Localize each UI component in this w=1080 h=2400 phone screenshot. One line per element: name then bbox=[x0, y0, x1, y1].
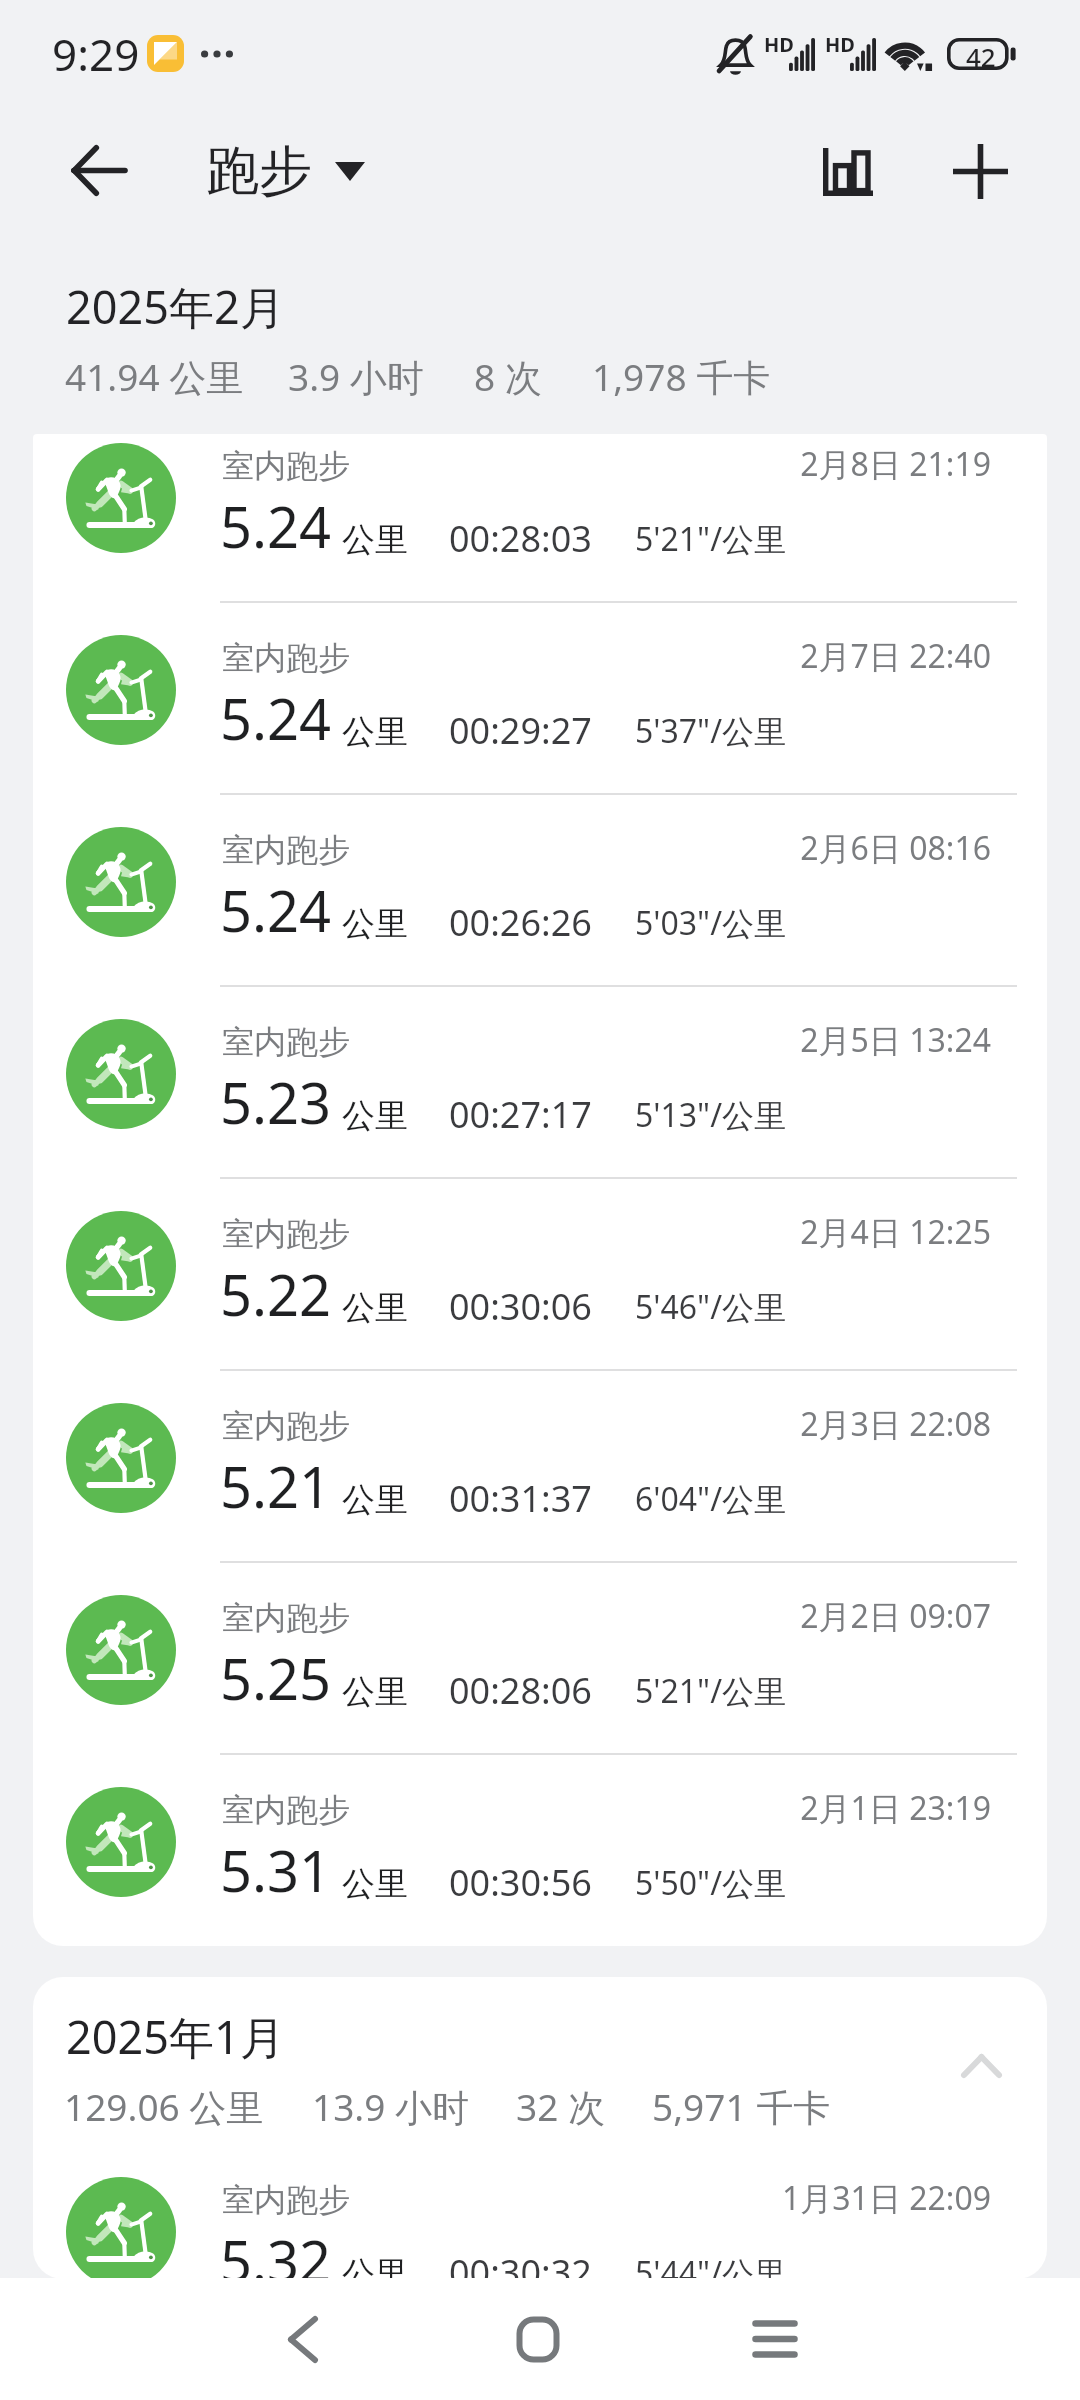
button[interactable]: Back bbox=[38, 110, 158, 230]
staticText: 1月31日 22:09 bbox=[681, 2176, 991, 2220]
staticText: 5'50"/公里 bbox=[635, 1861, 787, 1905]
button[interactable]: Back bbox=[233, 2278, 373, 2400]
staticText: 室内跑步 bbox=[222, 2180, 350, 2220]
button[interactable]: 室内跑步 bbox=[33, 1177, 1047, 1369]
staticText: 2月4日 12:25 bbox=[681, 1210, 991, 1254]
staticText: 00:30:06 bbox=[449, 1282, 592, 1331]
staticText: 00:30:56 bbox=[449, 1858, 592, 1907]
staticText: 5'44"/公里 bbox=[635, 2251, 787, 2279]
staticText: 13.9 小时 bbox=[312, 2081, 470, 2132]
staticText: 室内跑步 bbox=[222, 1406, 350, 1446]
button[interactable]: 室内跑步 bbox=[33, 1369, 1047, 1561]
staticText: 公里 bbox=[342, 711, 408, 753]
staticText: 公里 bbox=[342, 1671, 408, 1713]
staticText: 9:29 bbox=[52, 24, 140, 84]
staticText: 2025年2月 bbox=[66, 276, 285, 337]
button[interactable]: 室内跑步 bbox=[33, 434, 1047, 601]
staticText: 公里 bbox=[342, 1479, 408, 1521]
staticText: 00:31:37 bbox=[449, 1474, 592, 1523]
staticText: 5.21 bbox=[220, 1448, 332, 1524]
staticText: 6'04"/公里 bbox=[635, 1477, 787, 1521]
staticText: 129.06 公里 bbox=[64, 2081, 264, 2132]
staticText: 2月2日 09:07 bbox=[681, 1594, 991, 1638]
staticText: 公里 bbox=[342, 519, 408, 561]
staticText: 2月8日 21:19 bbox=[681, 442, 991, 486]
button[interactable]: 室内跑步 bbox=[33, 1561, 1047, 1753]
staticText: 00:29:27 bbox=[449, 706, 592, 755]
staticText: 1,978 千卡 bbox=[592, 351, 771, 402]
staticText: 室内跑步 bbox=[222, 1598, 350, 1638]
staticText: 2月1日 23:19 bbox=[681, 1786, 991, 1830]
button[interactable]: 室内跑步 bbox=[33, 793, 1047, 985]
staticText: 00:28:03 bbox=[449, 514, 592, 563]
button[interactable]: Recents bbox=[705, 2278, 845, 2400]
staticText: 室内跑步 bbox=[222, 1790, 350, 1830]
staticText: 公里 bbox=[342, 1287, 408, 1329]
staticText: 跑步 bbox=[206, 138, 312, 205]
staticText: 5.24 bbox=[220, 872, 332, 948]
staticText: 5.22 bbox=[220, 1256, 332, 1332]
staticText: 42 bbox=[966, 39, 996, 71]
staticText: HD bbox=[825, 31, 855, 58]
staticText: 5'37"/公里 bbox=[635, 709, 787, 753]
button[interactable]: 室内跑步 bbox=[33, 601, 1047, 793]
staticText: 室内跑步 bbox=[222, 638, 350, 678]
button[interactable]: 室内跑步 bbox=[33, 1753, 1047, 1921]
staticText: 公里 bbox=[342, 1095, 408, 1137]
staticText: 5.25 bbox=[220, 1640, 332, 1716]
staticText: HD bbox=[764, 31, 794, 58]
button[interactable]: Home bbox=[468, 2278, 608, 2400]
staticText: 00:28:06 bbox=[449, 1666, 592, 1715]
staticText: 00:30:32 bbox=[449, 2248, 592, 2279]
staticText: 32 次 bbox=[516, 2081, 605, 2132]
button[interactable]: 室内跑步 bbox=[33, 985, 1047, 1177]
staticText: 5'03"/公里 bbox=[635, 901, 787, 945]
staticText: 室内跑步 bbox=[222, 1022, 350, 1062]
staticText: 公里 bbox=[342, 903, 408, 945]
button[interactable]: Add bbox=[920, 111, 1040, 231]
staticText: 5,971 千卡 bbox=[652, 2081, 831, 2132]
button[interactable]: Statistics bbox=[788, 111, 908, 231]
staticText: 3.9 小时 bbox=[288, 351, 424, 402]
staticText: 2月3日 22:08 bbox=[681, 1402, 991, 1446]
staticText: 室内跑步 bbox=[222, 830, 350, 870]
staticText: 00:26:26 bbox=[449, 898, 592, 947]
staticText: 5.24 bbox=[220, 680, 332, 756]
staticText: 5.24 bbox=[220, 488, 332, 564]
staticText: 5'13"/公里 bbox=[635, 1093, 787, 1137]
staticText: 8 次 bbox=[474, 351, 542, 402]
staticText: 室内跑步 bbox=[222, 446, 350, 486]
button[interactable]: Collapse bbox=[931, 2016, 1031, 2116]
staticText: 公里 bbox=[342, 1863, 408, 1905]
staticText: 5.23 bbox=[220, 1064, 332, 1140]
button[interactable]: 跑步 bbox=[198, 120, 374, 196]
staticText: 2月6日 08:16 bbox=[681, 826, 991, 870]
staticText: 41.94 公里 bbox=[65, 351, 244, 402]
staticText: 室内跑步 bbox=[222, 1214, 350, 1254]
staticText: 公里 bbox=[342, 2253, 408, 2279]
staticText: 2月5日 13:24 bbox=[681, 1018, 991, 1062]
staticText: 5'46"/公里 bbox=[635, 1285, 787, 1329]
staticText: 00:27:17 bbox=[449, 1090, 592, 1139]
button[interactable]: 室内跑步 bbox=[33, 2143, 1047, 2279]
staticText: 2月7日 22:40 bbox=[681, 634, 991, 678]
staticText: 5.31 bbox=[220, 1832, 332, 1908]
staticText: 2025年1月 bbox=[66, 2006, 285, 2067]
staticText: 5'21"/公里 bbox=[635, 517, 787, 561]
staticText: 5.32 bbox=[220, 2222, 332, 2279]
staticText: 5'21"/公里 bbox=[635, 1669, 787, 1713]
